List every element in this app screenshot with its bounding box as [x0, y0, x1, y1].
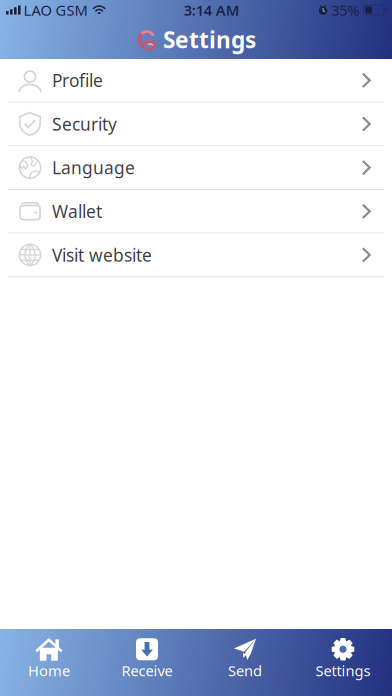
staticText: Settings — [163, 24, 256, 54]
button[interactable]: Language — [0, 146, 392, 190]
staticText: Wallet — [52, 200, 102, 223]
button[interactable]: Profile — [0, 59, 392, 103]
staticText: Settings — [315, 661, 370, 680]
staticText: 35% — [331, 0, 359, 20]
button[interactable]: Settings — [294, 624, 392, 696]
button[interactable]: Security — [0, 103, 392, 146]
staticText: Language — [52, 156, 135, 179]
button[interactable]: Home — [0, 624, 98, 696]
staticText: Receive — [121, 661, 172, 680]
staticText: LAO GSM — [24, 0, 88, 20]
button[interactable]: Visit website — [0, 234, 392, 277]
button[interactable]: Wallet — [0, 190, 392, 233]
staticText: Send — [228, 661, 262, 680]
staticText: Profile — [52, 69, 103, 92]
staticText: Security — [52, 112, 117, 135]
staticText: 3:14 AM — [184, 0, 240, 20]
staticText: Visit website — [52, 243, 152, 266]
button[interactable]: Receive — [98, 624, 196, 696]
staticText: Home — [28, 661, 70, 680]
button[interactable]: Send — [196, 624, 294, 696]
